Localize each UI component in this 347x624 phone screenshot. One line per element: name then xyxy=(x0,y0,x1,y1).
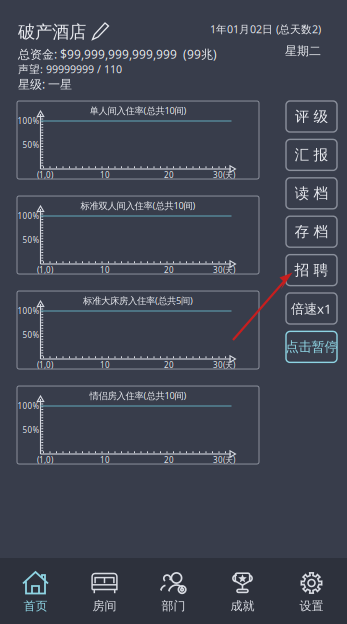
staticText: 30(天) xyxy=(213,360,235,370)
staticText: 存 档 xyxy=(294,223,328,241)
staticText: 设置 xyxy=(299,599,323,613)
button[interactable]: 成就 xyxy=(208,558,277,624)
button[interactable]: 汇 报 xyxy=(286,139,337,170)
button[interactable]: 读 档 xyxy=(286,178,337,209)
staticText: (1,0) xyxy=(37,360,53,370)
button[interactable]: 部门 xyxy=(139,558,208,624)
staticText: 20 xyxy=(164,360,174,370)
button[interactable]: 倍速x1 xyxy=(286,293,337,324)
staticText: 破产酒店 xyxy=(18,21,86,43)
staticText: 10 xyxy=(100,360,110,370)
staticText: 1年01月02日 (总天数2) xyxy=(210,22,321,36)
staticText: 100% xyxy=(17,116,39,126)
staticText: 100% xyxy=(17,306,39,316)
staticText: 10 xyxy=(100,170,110,180)
staticText: 20 xyxy=(164,455,174,465)
staticText: 成就 xyxy=(230,599,254,613)
staticText: 50% xyxy=(22,140,39,150)
staticText: 30(天) xyxy=(213,170,235,180)
staticText: 部门 xyxy=(161,599,185,613)
staticText: 20 xyxy=(164,265,174,275)
staticText: 房间 xyxy=(92,599,116,613)
button[interactable]: 房间 xyxy=(70,558,139,624)
button[interactable]: 重命名 xyxy=(91,21,111,41)
staticText: 10 xyxy=(100,455,110,465)
staticText: 星期二 xyxy=(285,44,321,58)
staticText: 情侣房入住率(总共10间) xyxy=(89,389,186,402)
staticText: 招 聘 xyxy=(294,261,328,279)
staticText: 汇 报 xyxy=(294,146,328,164)
button[interactable]: 招 聘 xyxy=(286,255,337,286)
staticText: 总资金: $99,999,999,999,999 (99兆) xyxy=(18,46,217,62)
staticText: 标准双人间入住率(总共10间) xyxy=(80,199,195,212)
button[interactable]: 设置 xyxy=(277,558,346,624)
staticText: 50% xyxy=(22,235,39,245)
staticText: 50% xyxy=(22,425,39,435)
button[interactable]: 评 级 xyxy=(286,101,337,132)
button[interactable]: 存 档 xyxy=(286,216,337,247)
staticText: 点击暂停 xyxy=(285,339,337,355)
staticText: 首页 xyxy=(23,599,47,613)
staticText: 100% xyxy=(17,211,39,221)
staticText: (1,0) xyxy=(37,265,53,275)
staticText: 单人间入住率(总共10间) xyxy=(89,104,186,117)
staticText: 100% xyxy=(17,401,39,411)
staticText: 评 级 xyxy=(294,107,328,125)
staticText: (1,0) xyxy=(37,170,53,180)
staticText: 20 xyxy=(164,170,174,180)
staticText: 50% xyxy=(22,330,39,340)
button[interactable]: 点击暂停 xyxy=(286,331,337,362)
staticText: 星级: 一星 xyxy=(18,76,72,92)
staticText: 30(天) xyxy=(213,265,235,275)
staticText: 声望: 99999999 / 110 xyxy=(18,62,122,76)
staticText: 10 xyxy=(100,265,110,275)
staticText: 30(天) xyxy=(213,455,235,465)
staticText: 读 档 xyxy=(294,184,328,202)
staticText: (1,0) xyxy=(37,455,53,465)
staticText: 倍速x1 xyxy=(291,300,332,317)
button[interactable]: 首页 xyxy=(1,558,70,624)
staticText: 标准大床房入住率(总共5间) xyxy=(83,294,193,307)
